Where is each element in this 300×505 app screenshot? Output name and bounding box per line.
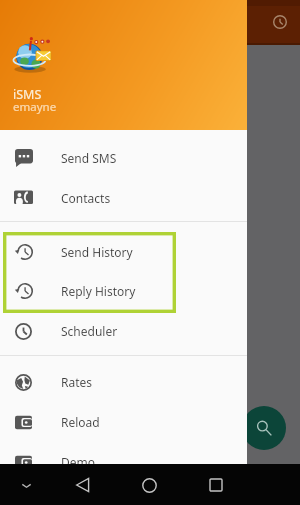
button[interactable]: History <box>266 8 294 36</box>
staticText: Contacts <box>61 190 111 206</box>
button[interactable]: Contacts <box>0 178 247 218</box>
button[interactable]: Recents <box>201 470 231 500</box>
button[interactable]: Back <box>68 470 98 500</box>
staticText: Rates <box>61 374 93 390</box>
button[interactable]: Send History <box>0 232 247 272</box>
staticText: iSMS <box>13 86 42 103</box>
button[interactable]: Rates <box>0 362 247 402</box>
button[interactable]: Search <box>242 406 286 450</box>
staticText: Reload <box>61 414 100 430</box>
button[interactable]: Home <box>134 470 164 500</box>
button[interactable]: Reply History <box>0 271 247 311</box>
button[interactable]: Scheduler <box>0 311 247 351</box>
button[interactable]: Reload <box>0 402 247 442</box>
staticText: Scheduler <box>61 323 118 339</box>
staticText: Reply History <box>61 283 136 299</box>
staticText: Demo <box>61 454 96 470</box>
button[interactable]: Send SMS <box>0 138 247 178</box>
button[interactable]: Hide <box>14 473 38 497</box>
staticText: Send SMS <box>61 150 117 166</box>
staticText: emayne <box>13 99 57 115</box>
button[interactable]: Demo <box>0 442 247 482</box>
staticText: Send History <box>61 244 133 260</box>
